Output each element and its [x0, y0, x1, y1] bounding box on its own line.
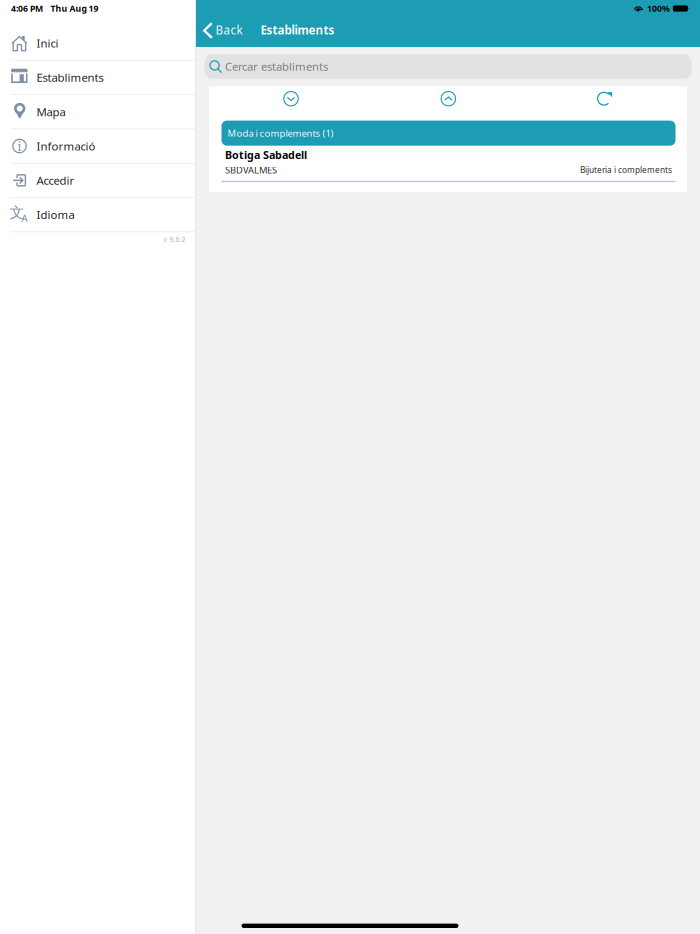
staticText: Moda i complements (1) [227, 127, 333, 140]
staticText: v 9.6.2 [163, 235, 185, 244]
button[interactable]: Refresh [524, 88, 687, 110]
staticText: Establiments [260, 22, 334, 38]
staticText: Accedir [36, 173, 74, 188]
button[interactable]: Mapa [0, 95, 195, 129]
button[interactable]: Expand all groups [209, 88, 373, 110]
button[interactable]: Collapse all groups [373, 88, 524, 110]
button[interactable]: Inici [0, 26, 195, 61]
staticText: Cercar establiments [225, 59, 328, 74]
staticText: 文 [9, 203, 24, 222]
button[interactable]: Establiments [0, 61, 195, 95]
button[interactable]: Back [196, 17, 249, 43]
button[interactable]: i [0, 129, 195, 164]
button[interactable]: Botiga Sabadell [209, 146, 687, 182]
staticText: i [17, 138, 21, 154]
staticText: Botiga Sabadell [225, 147, 307, 162]
staticText: A [21, 212, 27, 224]
button[interactable]: Moda i complements (1) [209, 110, 687, 146]
staticText: Thu Aug 19 [50, 3, 98, 14]
staticText: 100% [647, 3, 670, 14]
staticText: Idioma [36, 207, 74, 222]
staticText: Back [215, 22, 242, 38]
staticText: Establiments [36, 70, 103, 85]
staticText: 4:06 PM [11, 3, 43, 14]
staticText: Mapa [36, 104, 65, 119]
staticText: SBDVALMES [225, 163, 277, 176]
staticText: Informació [36, 138, 95, 154]
staticText: Inici [36, 35, 58, 51]
button[interactable]: Accedir [0, 164, 195, 198]
staticText: Bijuteria i complements [580, 164, 672, 176]
button[interactable]: 文 [0, 198, 195, 232]
